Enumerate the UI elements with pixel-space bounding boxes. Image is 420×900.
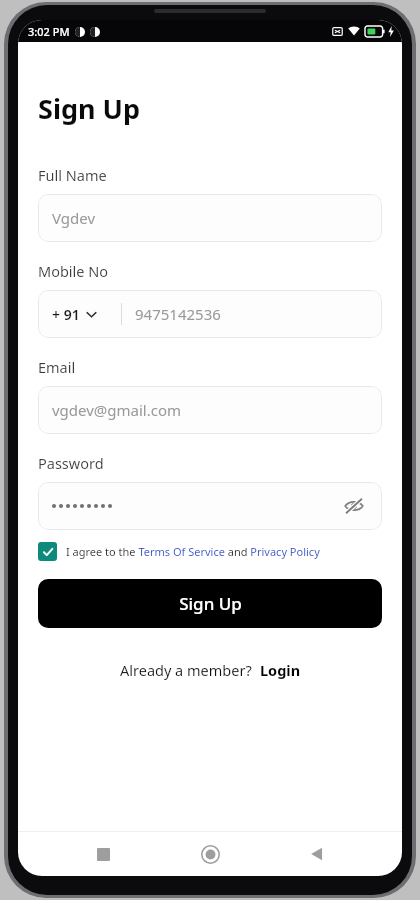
staticText: Mobile No [38, 261, 109, 281]
staticText: Vgdev [52, 208, 96, 228]
staticText: vgdev@gmail.com [52, 400, 182, 420]
staticText: 3:02 PM [28, 24, 70, 39]
staticText: I agree to the Terms Of Service and Priv… [66, 544, 320, 559]
button[interactable]: Sign Up [38, 579, 382, 628]
staticText: Email [38, 357, 76, 377]
other: Select country code [86, 309, 97, 320]
staticText: Sign Up [179, 592, 242, 615]
staticText: Password [38, 453, 104, 473]
button[interactable]: Vgdev [38, 194, 382, 242]
button[interactable]: Toggle password visibility [340, 492, 368, 520]
staticText: Full Name [38, 165, 107, 185]
button[interactable]: I agree to the Terms Of Service and Priv… [38, 542, 382, 561]
button[interactable]: Toggle password visibility [38, 482, 382, 530]
button[interactable]: 9475142536 [122, 290, 382, 338]
button[interactable]: Home [188, 832, 232, 876]
staticText: Sign Up [38, 90, 141, 127]
staticText: 9475142536 [135, 304, 221, 324]
staticText: + 91 [52, 305, 80, 324]
button[interactable]: + 91 [38, 290, 121, 338]
button[interactable]: vgdev@gmail.com [38, 386, 382, 434]
button[interactable]: Recent apps [81, 832, 125, 876]
button[interactable]: Back [295, 832, 339, 876]
button[interactable]: Login [260, 660, 301, 680]
staticText: Login [260, 660, 301, 680]
staticText: Already a member? [120, 660, 252, 680]
